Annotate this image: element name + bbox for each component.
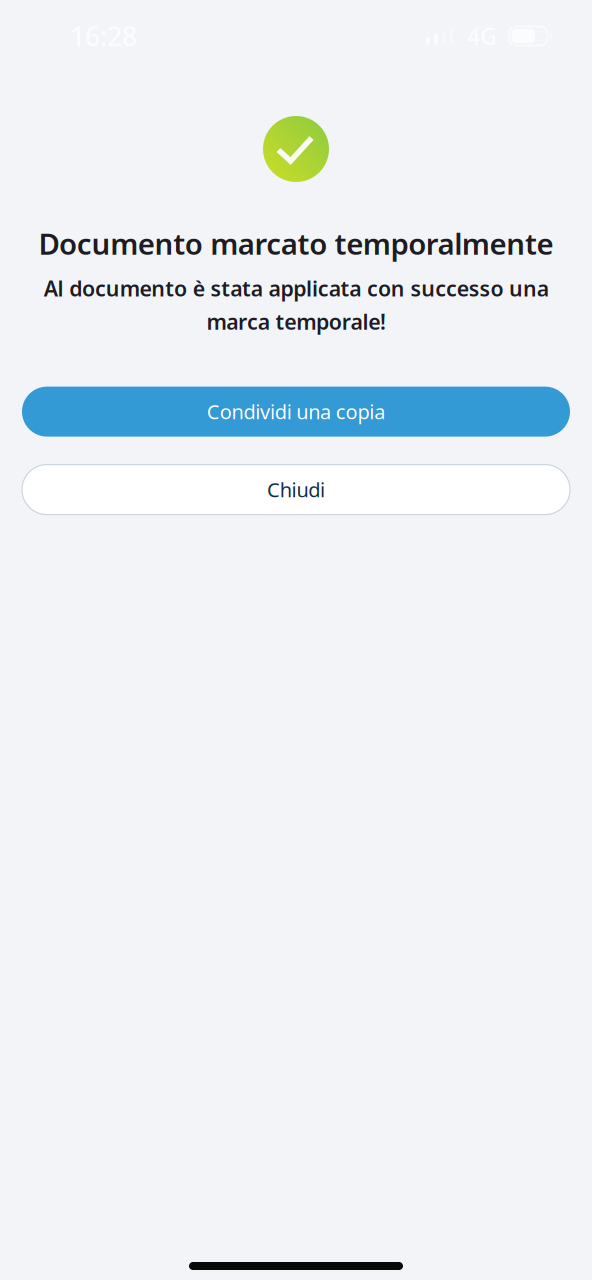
button[interactable]: Chiudi xyxy=(22,465,570,515)
staticText: Chiudi xyxy=(267,476,325,503)
button[interactable]: Condividi una copia xyxy=(22,387,570,437)
staticText: Al documento è stata applicata con succe… xyxy=(43,274,549,336)
staticText: 16:28 xyxy=(70,18,137,54)
staticText: Documento marcato temporalmente xyxy=(38,224,554,263)
staticText: Condividi una copia xyxy=(207,398,385,425)
staticText: 4G xyxy=(467,21,496,51)
